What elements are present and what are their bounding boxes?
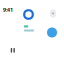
button[interactable]: Pause xyxy=(11,48,15,53)
button[interactable]: Profile xyxy=(50,9,56,17)
staticText: 9:41 xyxy=(3,6,13,13)
